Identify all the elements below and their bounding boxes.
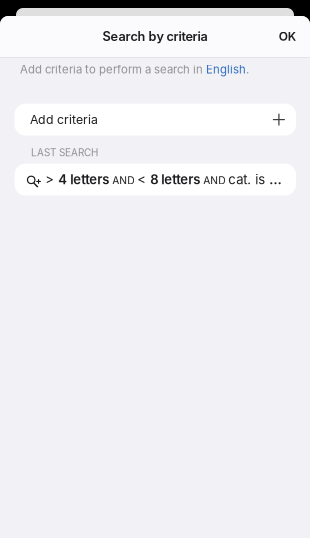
staticText: Add criteria [30, 112, 98, 127]
staticText: Search by criteria [102, 29, 207, 44]
staticText: Add criteria to perform a search in [20, 63, 206, 76]
button[interactable]: English [206, 63, 246, 76]
button[interactable]: Add criteria [14, 104, 296, 136]
button[interactable]: > 4 letters AND < 8 letters AND cat. is … [14, 164, 296, 196]
staticText: OK [279, 29, 296, 44]
button[interactable]: OK [254, 16, 310, 57]
staticText: > 4 letters AND < 8 letters AND cat. is … [41, 172, 284, 187]
staticText: LAST SEARCH [31, 147, 98, 158]
staticText: English [206, 63, 246, 76]
staticText: . [246, 63, 249, 76]
